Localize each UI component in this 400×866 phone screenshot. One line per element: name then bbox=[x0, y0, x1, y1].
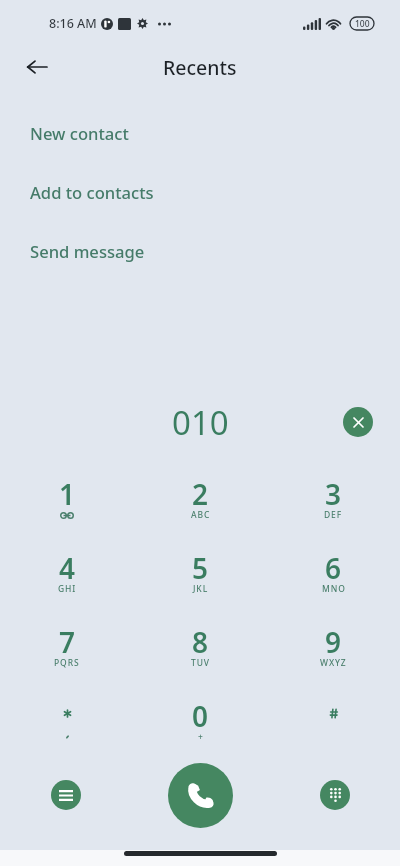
button[interactable]: 2 bbox=[134, 474, 267, 548]
button[interactable]: 5 bbox=[134, 548, 267, 622]
staticText: 8:16 AM bbox=[49, 15, 97, 32]
staticText: 100 bbox=[355, 18, 370, 30]
staticText: PQRS bbox=[54, 657, 80, 669]
staticText: 6 bbox=[325, 549, 342, 587]
staticText: + bbox=[198, 731, 204, 743]
staticText: 5 bbox=[192, 549, 209, 587]
button[interactable]: 4 bbox=[0, 548, 134, 622]
button[interactable]: 9 bbox=[267, 622, 400, 696]
button[interactable]: 7 bbox=[0, 622, 134, 696]
staticText: 1 bbox=[59, 475, 76, 513]
staticText: DEF bbox=[324, 509, 343, 521]
staticText: 010 bbox=[172, 400, 229, 445]
button[interactable]: Send message bbox=[0, 222, 400, 281]
button[interactable]: Call bbox=[168, 763, 233, 828]
staticText: Recents bbox=[163, 54, 237, 81]
button[interactable]: Delete bbox=[343, 407, 373, 437]
button[interactable]: Dialpad bbox=[320, 780, 350, 810]
button[interactable]: Add to contacts bbox=[0, 163, 400, 222]
button[interactable]: 6 bbox=[267, 548, 400, 622]
button[interactable]: 1 bbox=[0, 474, 134, 548]
staticText: 9 bbox=[325, 623, 342, 661]
staticText: 0 bbox=[192, 697, 209, 735]
staticText: WXYZ bbox=[320, 657, 347, 669]
button[interactable]: 8 bbox=[134, 622, 267, 696]
staticText: 7 bbox=[59, 623, 76, 661]
staticText: MNO bbox=[322, 583, 346, 595]
staticText: ABC bbox=[191, 509, 211, 521]
button[interactable] bbox=[0, 696, 134, 770]
staticText: 2 bbox=[192, 475, 209, 513]
button[interactable]: Menu bbox=[51, 780, 81, 810]
staticText: Send message bbox=[30, 240, 145, 263]
staticText: 3 bbox=[325, 475, 342, 513]
staticText: 4 bbox=[59, 549, 76, 587]
staticText: GHI bbox=[58, 583, 77, 595]
button[interactable] bbox=[267, 696, 400, 770]
button[interactable]: New contact bbox=[0, 104, 400, 163]
staticText: TUV bbox=[191, 657, 210, 669]
button[interactable]: 0 bbox=[134, 696, 267, 770]
staticText: Add to contacts bbox=[30, 181, 154, 204]
staticText: 8 bbox=[192, 623, 209, 661]
button[interactable]: Back bbox=[15, 45, 59, 89]
staticText: JKL bbox=[193, 583, 209, 595]
button[interactable]: 3 bbox=[267, 474, 400, 548]
staticText: New contact bbox=[30, 122, 129, 145]
